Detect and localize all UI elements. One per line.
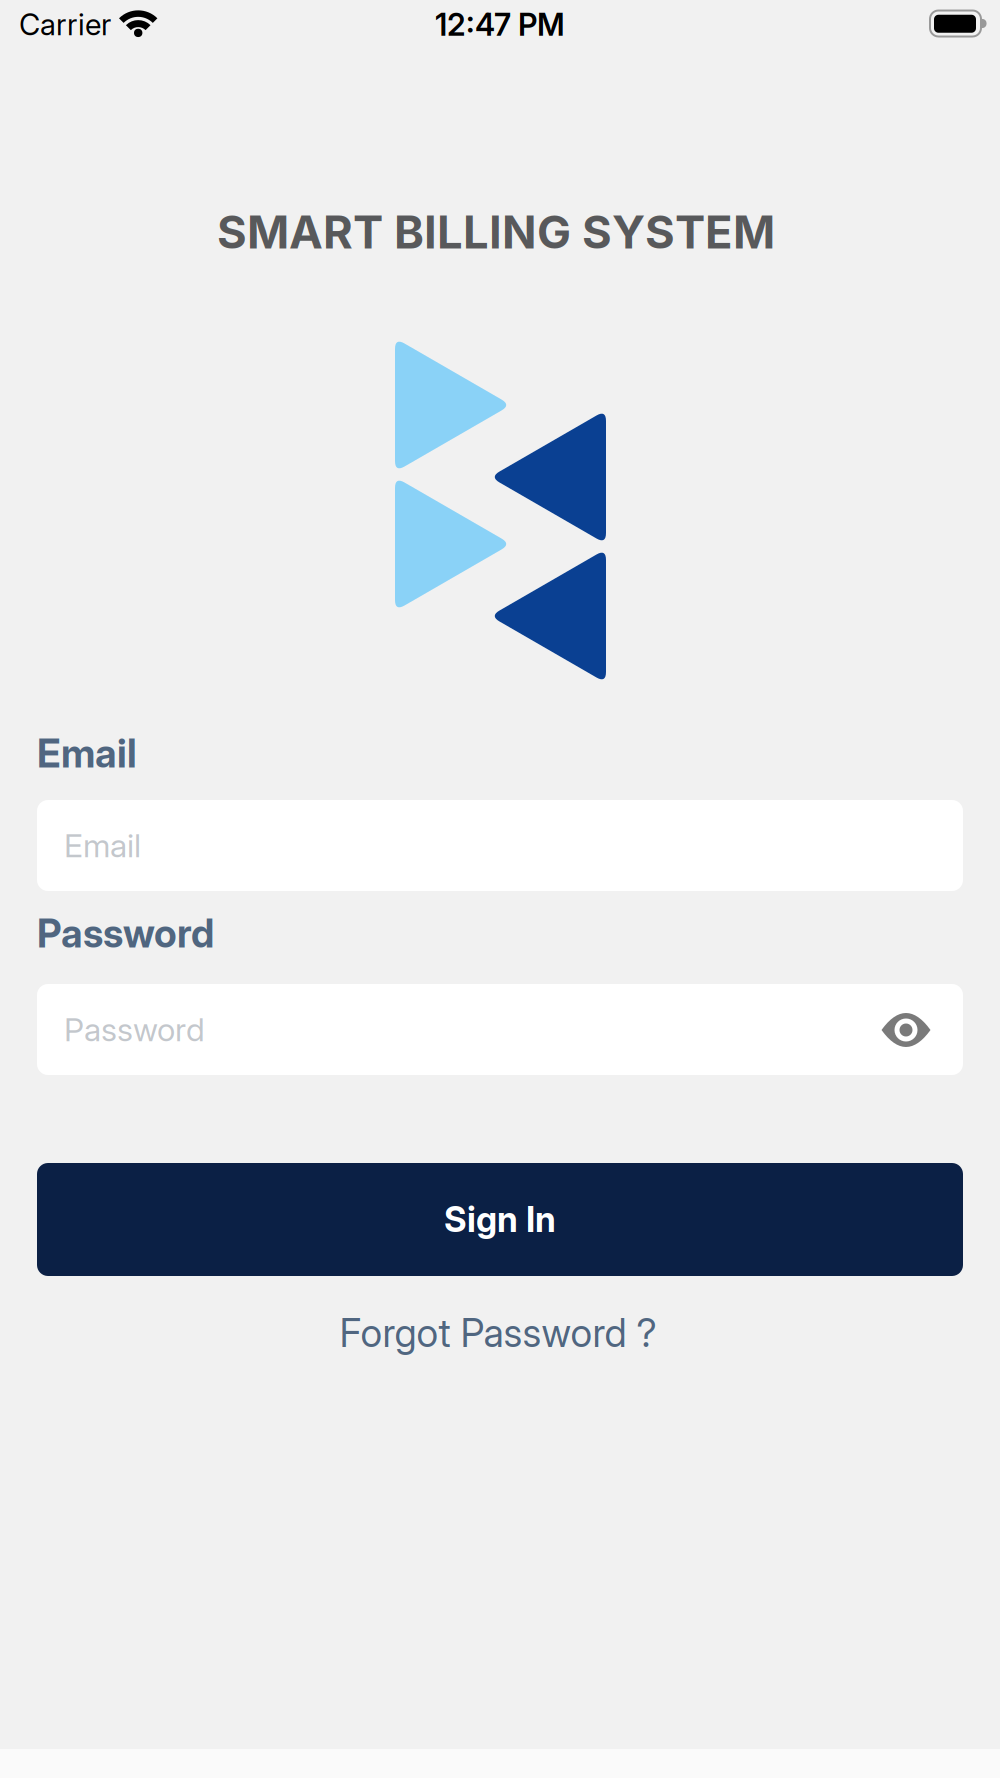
staticText: Email	[37, 731, 137, 776]
staticText: SMART BILLING SYSTEM	[217, 205, 775, 259]
button[interactable]: Sign In	[37, 1163, 963, 1276]
staticText: Carrier	[19, 7, 111, 42]
staticText: Sign In	[444, 1199, 556, 1240]
staticText: Password	[64, 1011, 205, 1048]
button[interactable]: Password	[37, 984, 963, 1075]
staticText: Password	[37, 911, 214, 956]
staticText: Email	[64, 827, 141, 864]
staticText: 12:47 PM	[435, 6, 565, 43]
button[interactable]: Email	[37, 800, 963, 891]
staticText: Forgot Password ?	[339, 1310, 656, 1356]
button[interactable]: Forgot Password ?	[339, 1310, 656, 1356]
button[interactable]: Show password	[875, 1005, 936, 1055]
